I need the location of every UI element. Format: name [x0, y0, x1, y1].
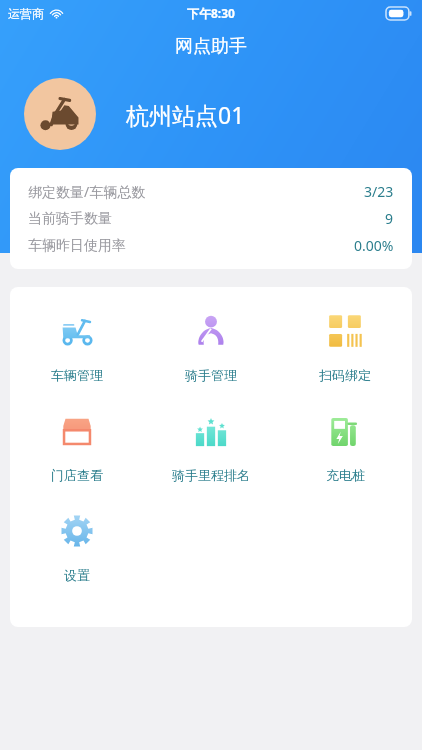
button[interactable]: 当前骑手数量	[28, 209, 394, 228]
staticText: 下午8:30	[187, 5, 235, 21]
button[interactable]: 充电桩	[278, 405, 412, 505]
staticText: 当前骑手数量	[28, 210, 112, 228]
staticText: 骑手里程排名	[172, 467, 250, 483]
button[interactable]: 门店查看	[10, 405, 144, 505]
staticText: 杭州站点01	[126, 99, 245, 130]
staticText: 骑手管理	[185, 367, 237, 383]
staticText: 9	[385, 209, 394, 228]
staticText: 0.00%	[354, 236, 394, 255]
button[interactable]: 骑手管理	[144, 305, 278, 405]
staticText: 设置	[64, 567, 90, 583]
staticText: 3/23	[364, 182, 394, 201]
button[interactable]: 骑手里程排名	[144, 405, 278, 505]
button[interactable]: Station avatar	[24, 78, 96, 150]
staticText: 充电桩	[326, 467, 365, 483]
staticText: 运营商	[8, 6, 44, 21]
staticText: 门店查看	[51, 467, 103, 483]
button[interactable]: 设置	[10, 505, 144, 605]
staticText: 网点助手	[175, 35, 247, 58]
staticText: 扫码绑定	[319, 367, 371, 383]
button[interactable]: 车辆昨日使用率	[28, 236, 394, 255]
button[interactable]: 扫码绑定	[278, 305, 412, 405]
button[interactable]: 绑定数量/车辆总数	[28, 182, 394, 201]
staticText: 车辆管理	[51, 367, 103, 383]
staticText: 车辆昨日使用率	[28, 237, 126, 255]
button[interactable]: 车辆管理	[10, 305, 144, 405]
staticText: 绑定数量/车辆总数	[28, 182, 146, 201]
